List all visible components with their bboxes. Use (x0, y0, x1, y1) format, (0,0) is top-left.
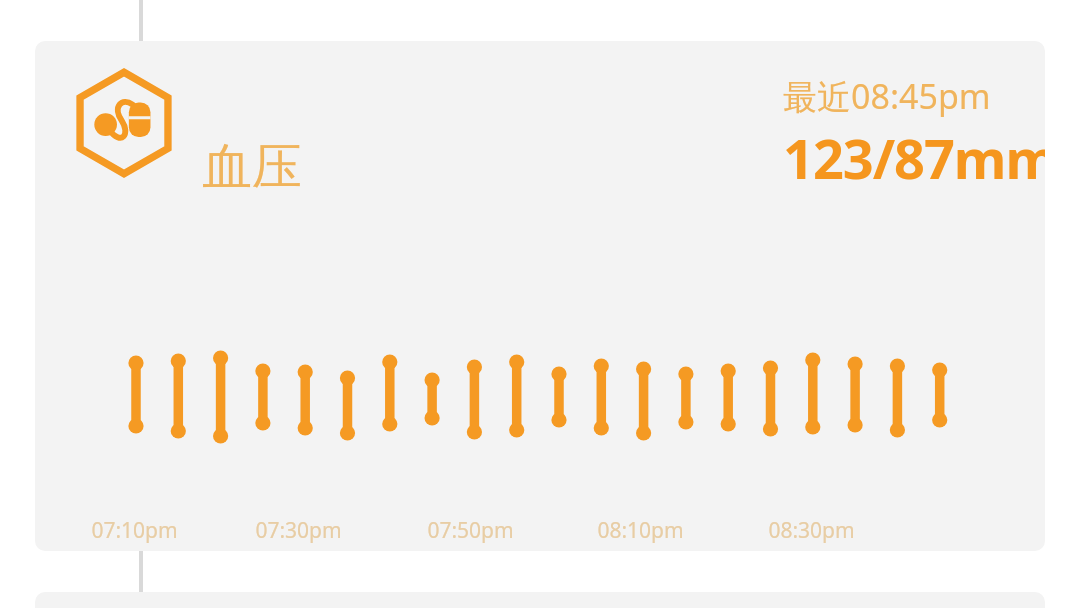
staticText: 07:30pm (255, 516, 342, 545)
staticText: 07:50pm (427, 516, 514, 545)
staticText: 123/87mmHg (783, 121, 1045, 195)
button[interactable]: Blood pressure (35, 41, 1045, 551)
other: Blood pressure (70, 69, 178, 177)
staticText: 07:10pm (91, 516, 178, 545)
staticText: 08:10pm (597, 516, 684, 545)
staticText: 08:30pm (768, 516, 855, 545)
staticText: 血压 (202, 136, 302, 199)
staticText: 最近08:45pm (783, 73, 991, 119)
